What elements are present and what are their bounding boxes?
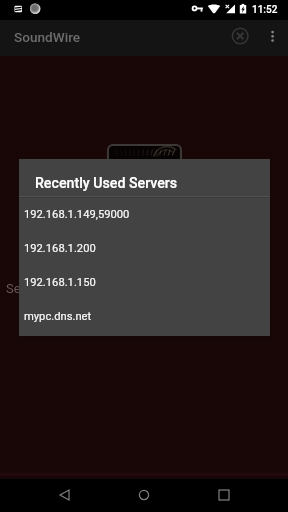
staticText: 192.168.1.149,59000 xyxy=(24,208,130,221)
button[interactable]: Home xyxy=(120,479,168,512)
button[interactable]: More options xyxy=(262,20,284,56)
staticText: SoundWire xyxy=(14,29,81,45)
staticText: Recently Used Servers xyxy=(35,175,178,192)
staticText: Server address xyxy=(6,281,93,296)
button[interactable]: 192.168.1.149,59000 xyxy=(19,197,270,231)
staticText: 11:52 xyxy=(252,4,278,16)
button[interactable]: 192.168.1.150 xyxy=(19,265,270,299)
staticText: mypc.dns.net xyxy=(24,310,92,323)
button[interactable]: mypc.dns.net xyxy=(19,299,270,333)
button[interactable]: 192.168.1.200 xyxy=(19,231,270,265)
button[interactable]: Back xyxy=(40,479,88,512)
button[interactable]: Disconnect xyxy=(226,20,254,56)
staticText: 192.168.1.200 xyxy=(24,242,96,255)
button[interactable]: Recent apps xyxy=(200,479,248,512)
staticText: 192.168.1.150 xyxy=(24,276,96,289)
